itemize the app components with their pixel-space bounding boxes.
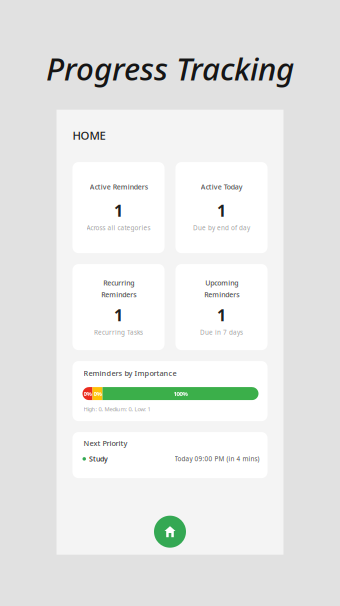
staticText: Due in 7 days: [200, 328, 243, 337]
staticText: Recurring Reminders: [101, 278, 136, 299]
staticText: Study: [89, 454, 108, 464]
staticText: 1: [217, 304, 226, 326]
staticText: 1: [114, 304, 123, 326]
staticText: HOME: [72, 128, 105, 143]
staticText: Upcoming Reminders: [204, 278, 239, 299]
staticText: 1: [114, 200, 123, 221]
staticText: High: 0, Medium: 0, Low: 1: [83, 405, 150, 413]
staticText: Active Today: [200, 182, 242, 192]
button[interactable]: Home: [154, 516, 186, 548]
staticText: Progress Tracking: [46, 47, 294, 90]
staticText: Reminders by Importance: [83, 368, 176, 378]
staticText: 1: [217, 200, 226, 221]
staticText: 0%: [93, 389, 101, 398]
staticText: Due by end of day: [193, 223, 250, 232]
staticText: Across all categories: [86, 223, 150, 232]
staticText: Next Priority: [83, 438, 127, 448]
staticText: 0%: [83, 389, 91, 398]
staticText: 100%: [173, 389, 187, 398]
staticText: Today 09:00 PM (in 4 mins): [174, 455, 259, 463]
staticText: Recurring Tasks: [94, 328, 143, 337]
staticText: Active Reminders: [89, 182, 147, 192]
